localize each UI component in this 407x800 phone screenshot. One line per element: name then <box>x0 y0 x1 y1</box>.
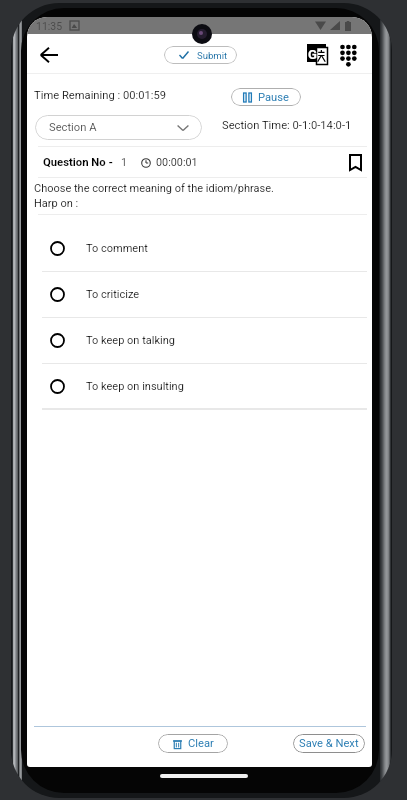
staticText: To criticize <box>86 288 140 301</box>
staticText: G <box>308 47 317 62</box>
button[interactable]: Clear <box>158 734 228 753</box>
staticText: Time Remaining : 00:01:59 <box>34 89 167 102</box>
button[interactable]: To keep on talking <box>50 317 367 363</box>
staticText: Harp on : <box>34 197 79 210</box>
staticText: To comment <box>86 242 148 255</box>
staticText: Section A <box>49 121 97 134</box>
staticText: 11:35 <box>36 20 63 32</box>
button[interactable]: Section A <box>35 115 202 140</box>
staticText: To keep on insulting <box>86 380 184 393</box>
button[interactable]: To criticize <box>50 271 367 317</box>
staticText: Section Time: 0-1:0-14:0-1 <box>222 119 352 132</box>
button[interactable]: Translate <box>307 44 328 65</box>
staticText: 00:00:01 <box>156 156 198 169</box>
button[interactable]: Apps <box>335 42 361 68</box>
staticText: Submit <box>197 50 228 61</box>
button[interactable]: Save & Next <box>293 734 365 753</box>
staticText: 1 <box>121 156 128 169</box>
button[interactable]: To comment <box>50 225 367 271</box>
staticText: Choose the correct meaning of the idiom/… <box>34 182 274 195</box>
button[interactable]: Bookmark <box>342 149 368 175</box>
button[interactable]: To keep on insulting <box>50 363 367 409</box>
staticText: Save & Next <box>299 737 359 750</box>
staticText: Pause <box>258 91 289 104</box>
staticText: Question No - <box>43 156 113 169</box>
staticText: Clear <box>188 737 214 750</box>
button[interactable]: Pause <box>231 88 301 106</box>
staticText: To keep on talking <box>86 334 175 347</box>
button[interactable]: Submit <box>164 46 237 64</box>
button[interactable]: Back <box>32 38 65 71</box>
